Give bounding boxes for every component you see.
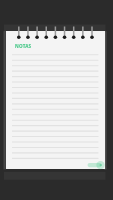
button[interactable]: NOTAS xyxy=(15,43,32,49)
button[interactable]: Nueva nota xyxy=(87,160,105,169)
